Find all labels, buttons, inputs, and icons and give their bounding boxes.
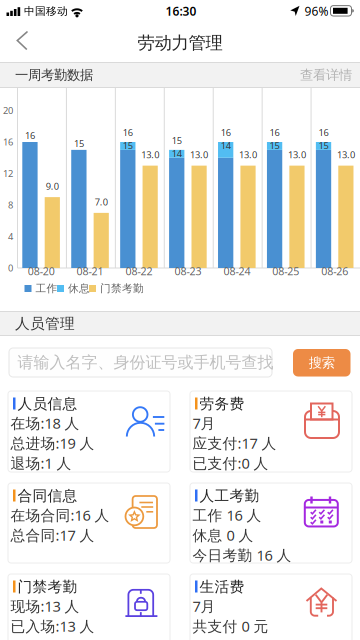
staticText: 08-26: [321, 264, 348, 278]
staticText: 9.0: [46, 180, 59, 192]
button[interactable]: 人工考勤: [190, 483, 352, 563]
staticText: 一周考勤数据: [15, 67, 93, 83]
button[interactable]: 搜索输入框: [9, 348, 272, 377]
staticText: 门禁考勤: [17, 578, 77, 596]
button[interactable]: 返回: [0, 24, 44, 58]
staticText: 08-21: [77, 264, 104, 278]
staticText: 13.0: [141, 148, 159, 161]
staticText: 查看详情: [300, 67, 352, 83]
staticText: 7.0: [95, 196, 108, 208]
staticText: 14: [172, 147, 182, 160]
staticText: 0: [8, 262, 13, 274]
staticText: 人员信息: [17, 395, 77, 413]
staticText: 16: [123, 126, 133, 139]
staticText: 08-23: [174, 264, 201, 278]
staticText: 15: [270, 139, 280, 152]
staticText: 退场:1 人: [10, 453, 71, 473]
staticText: 15: [74, 137, 84, 150]
staticText: 搜索: [309, 355, 335, 371]
staticText: 20: [3, 104, 13, 117]
staticText: 工作 16 人: [192, 505, 261, 525]
staticText: 08-25: [272, 264, 299, 278]
staticText: 生活费: [199, 578, 244, 596]
staticText: 人员管理: [15, 314, 75, 332]
staticText: 12: [3, 167, 13, 180]
staticText: 15: [172, 134, 182, 147]
button[interactable]: 门禁考勤: [8, 574, 170, 640]
staticText: 16:30: [165, 3, 196, 19]
button[interactable]: 查看详情: [0, 0, 360, 640]
staticText: 今日考勤 16 人: [192, 545, 291, 565]
staticText: 7月: [192, 596, 215, 616]
staticText: 共支付 0 元: [192, 616, 268, 636]
staticText: 8: [8, 199, 13, 211]
staticText: 08-20: [28, 264, 55, 278]
staticText: 总合同:17 人: [10, 525, 94, 545]
staticText: 工作: [35, 282, 57, 295]
staticText: 门禁考勤: [100, 282, 144, 295]
staticText: 现场:13 人: [10, 596, 79, 616]
staticText: 已入场:13 人: [10, 616, 94, 636]
staticText: 13.0: [190, 148, 208, 161]
staticText: 13.0: [239, 148, 257, 161]
staticText: 16: [3, 136, 13, 148]
staticText: 13.0: [288, 148, 306, 161]
staticText: 15: [318, 139, 328, 152]
staticText: 08-22: [125, 264, 152, 278]
staticText: 人工考勤: [199, 487, 259, 505]
staticText: 96%: [304, 3, 328, 19]
button[interactable]: 生活费: [190, 574, 352, 640]
staticText: 在场:18 人: [10, 413, 79, 433]
staticText: 休息 0 人: [192, 525, 253, 545]
staticText: 总进场:19 人: [10, 433, 94, 453]
staticText: 劳务费: [199, 395, 244, 413]
staticText: 7月: [192, 413, 215, 433]
staticText: 在场合同:16 人: [10, 505, 109, 525]
staticText: 08-24: [223, 264, 250, 278]
button[interactable]: 合同信息: [8, 483, 170, 563]
button[interactable]: 劳务费: [190, 391, 352, 472]
staticText: 合同信息: [17, 487, 77, 505]
button[interactable]: 搜索: [293, 349, 350, 376]
button[interactable]: 人员信息: [8, 391, 170, 472]
staticText: 中国移动: [24, 5, 68, 18]
staticText: 应支付:17 人: [192, 433, 276, 453]
staticText: 请输入名字、身份证号或手机号查找: [17, 353, 273, 372]
staticText: 16: [318, 126, 328, 139]
staticText: 13.0: [337, 148, 355, 161]
staticText: 劳动力管理: [137, 32, 222, 54]
staticText: 4: [8, 230, 13, 243]
staticText: 已支付:0 人: [192, 453, 268, 473]
staticText: 16: [25, 129, 35, 142]
staticText: 休息: [68, 282, 90, 295]
staticText: 15: [123, 139, 133, 152]
staticText: 16: [221, 126, 231, 139]
staticText: 16: [270, 126, 280, 139]
staticText: 14: [221, 139, 231, 152]
